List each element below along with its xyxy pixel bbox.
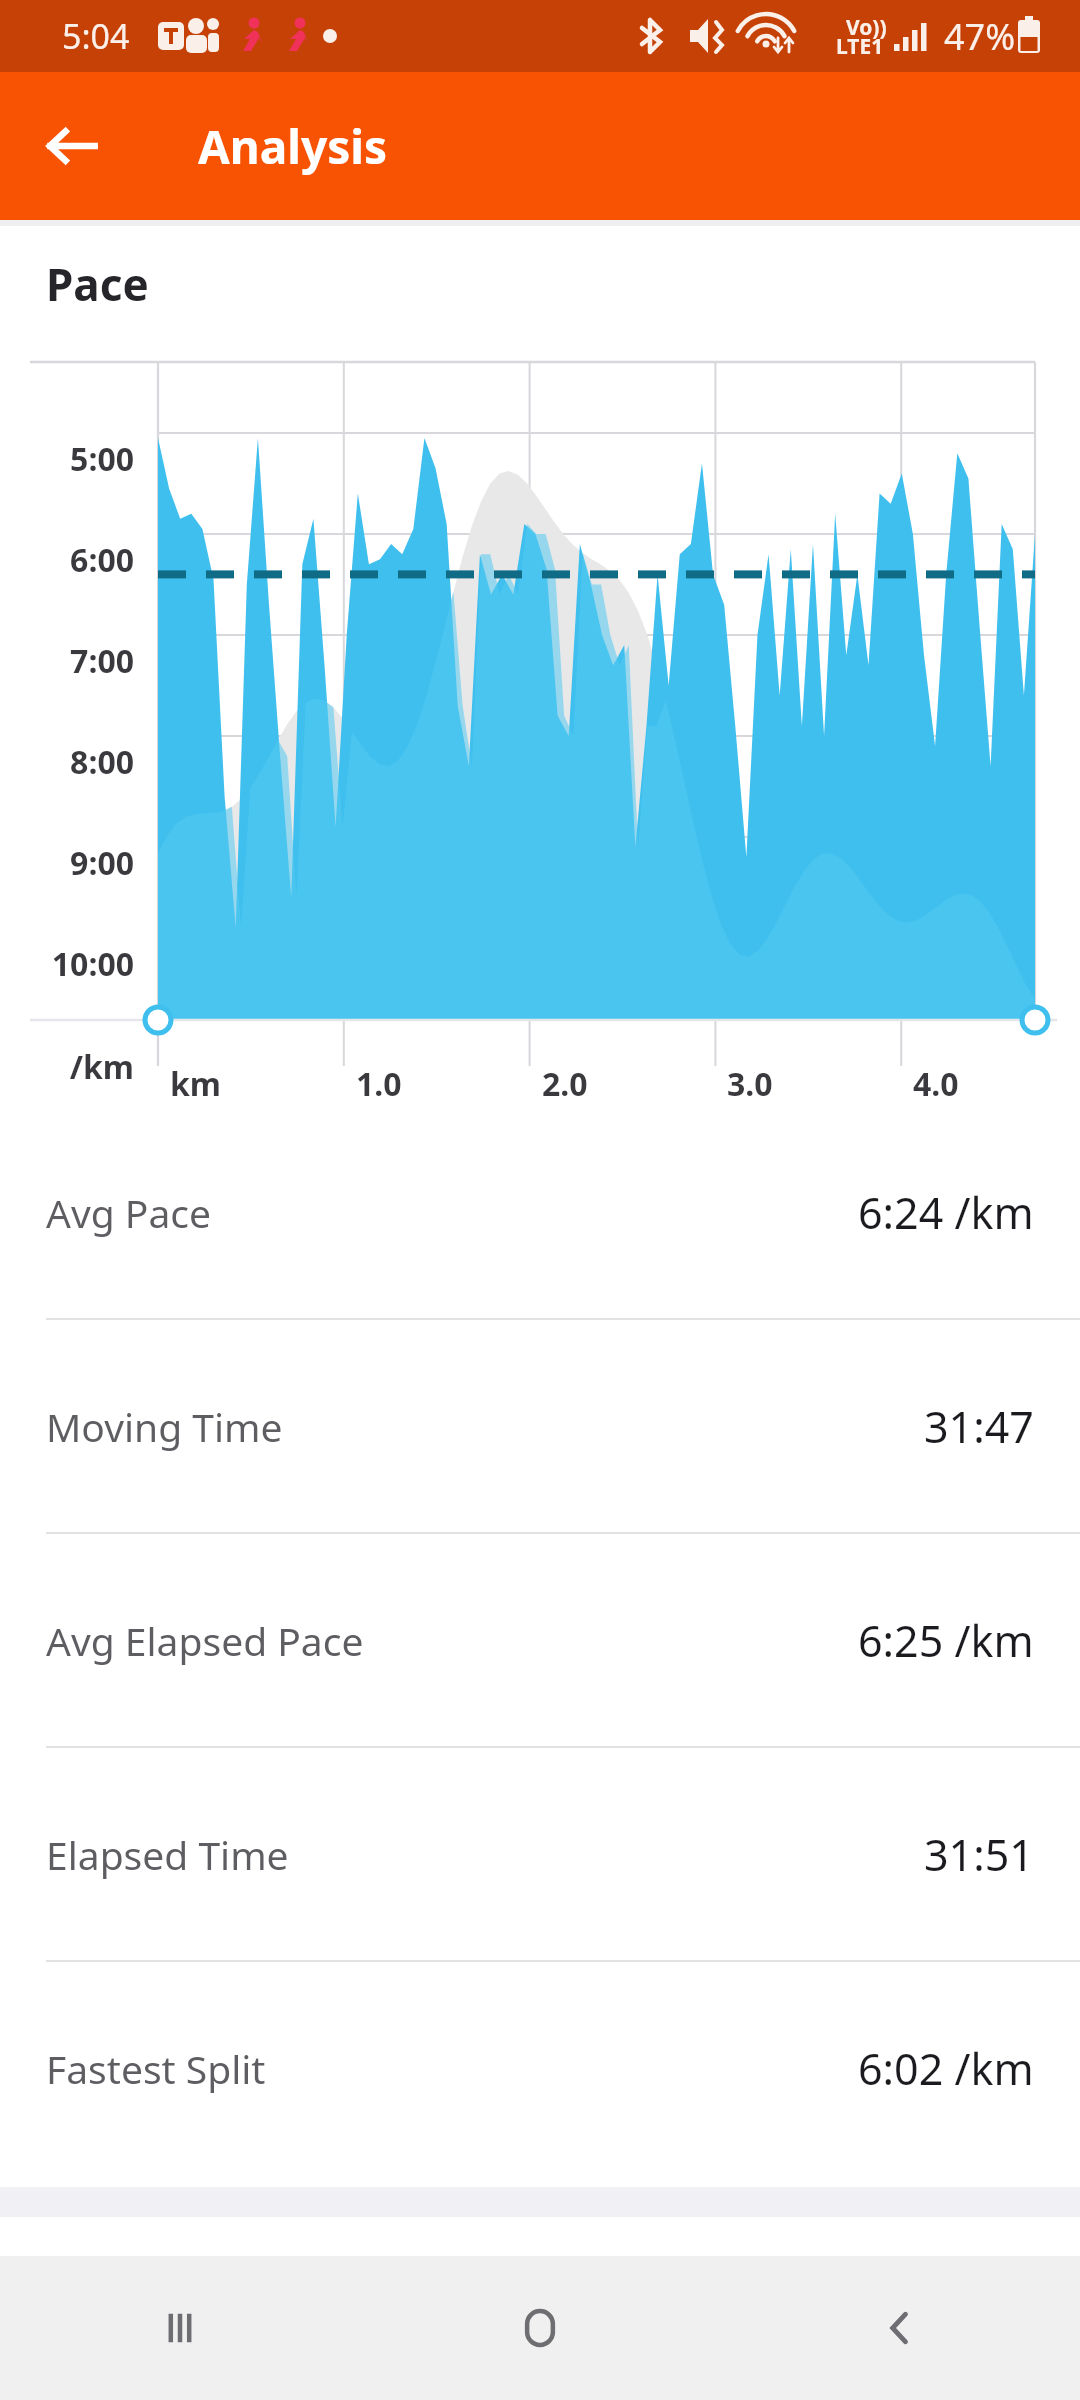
staticText: 8:00 xyxy=(0,740,134,784)
button[interactable]: Moving Time xyxy=(0,1320,1080,1532)
staticText: Fastest Split xyxy=(46,2042,266,2095)
staticText: Moving Time xyxy=(46,1400,283,1453)
staticText: 47% xyxy=(944,12,1016,61)
staticText: 2.0 xyxy=(542,1062,588,1106)
staticText: 7:00 xyxy=(0,639,134,683)
button[interactable]: Home xyxy=(360,2256,720,2400)
staticText: 6:24 /km xyxy=(858,1183,1034,1242)
staticText: 1.0 xyxy=(356,1062,402,1106)
staticText: Analysis xyxy=(198,115,388,178)
staticText: 5:04 xyxy=(62,13,130,59)
staticText: /km xyxy=(0,1045,134,1089)
staticText: km xyxy=(170,1062,222,1106)
button[interactable]: Recents xyxy=(0,2256,360,2400)
staticText: 6:02 /km xyxy=(858,2039,1034,2098)
staticText: Avg Elapsed Pace xyxy=(46,1614,364,1667)
button[interactable]: Elapsed Time xyxy=(0,1748,1080,1960)
staticText: 31:47 xyxy=(924,1397,1034,1456)
button[interactable]: Back xyxy=(720,2256,1080,2400)
button[interactable]: Fastest Split xyxy=(0,1962,1080,2174)
button[interactable]: Back xyxy=(28,102,116,190)
staticText: 3.0 xyxy=(727,1062,773,1106)
staticText: Pace xyxy=(46,254,149,314)
staticText: LTE1 xyxy=(836,32,884,61)
staticText: 4.0 xyxy=(913,1062,959,1106)
button[interactable]: Avg Pace xyxy=(0,1106,1080,1318)
staticText: 10:00 xyxy=(0,942,134,986)
staticText: 6:25 /km xyxy=(858,1611,1034,1670)
staticText: 31:51 xyxy=(924,1825,1034,1884)
button[interactable]: Avg Elapsed Pace xyxy=(0,1534,1080,1746)
staticText: 6:00 xyxy=(0,538,134,582)
staticText: 9:00 xyxy=(0,841,134,885)
staticText: 5:00 xyxy=(0,437,134,481)
staticText: Vo)) xyxy=(846,13,887,42)
staticText: Avg Pace xyxy=(46,1186,212,1239)
staticText: Elapsed Time xyxy=(46,1828,289,1881)
